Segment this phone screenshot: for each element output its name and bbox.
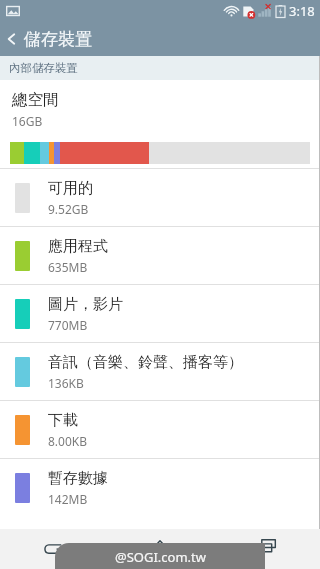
staticText: 圖片，影片: [48, 295, 123, 314]
button[interactable]: Recent apps: [213, 529, 320, 569]
button[interactable]: 下載: [0, 401, 320, 458]
staticText: 8.00KB: [48, 433, 88, 449]
staticText: 暫存數據: [48, 469, 108, 488]
staticText: 16GB: [12, 113, 43, 129]
staticText: 635MB: [48, 259, 88, 275]
staticText: 音訊（音樂、鈴聲、播客等）: [48, 353, 243, 372]
staticText: 總空間: [12, 90, 59, 110]
button[interactable]: Back to storage: [0, 22, 320, 56]
staticText: 770MB: [48, 317, 88, 333]
staticText: 應用程式: [48, 237, 108, 256]
staticText: 136KB: [48, 375, 84, 391]
staticText: 9.52GB: [48, 201, 89, 217]
staticText: 可用的: [48, 179, 93, 198]
staticText: 內部儲存裝置: [9, 61, 78, 75]
button[interactable]: 應用程式: [0, 227, 320, 284]
staticText: 142MB: [48, 491, 88, 507]
button[interactable]: 暫存數據: [0, 459, 320, 516]
button[interactable]: 圖片，影片: [0, 285, 320, 342]
staticText: 儲存裝置: [24, 29, 92, 50]
button[interactable]: Home: [106, 529, 213, 569]
button[interactable]: Back: [0, 529, 106, 569]
staticText: 3:18: [289, 2, 315, 20]
staticText: 下載: [48, 411, 78, 430]
button[interactable]: 總空間: [0, 80, 320, 138]
staticText: @SOGI.com.tw: [115, 548, 206, 566]
button[interactable]: 音訊（音樂、鈴聲、播客等）: [0, 343, 320, 400]
button[interactable]: 可用的: [0, 169, 320, 226]
